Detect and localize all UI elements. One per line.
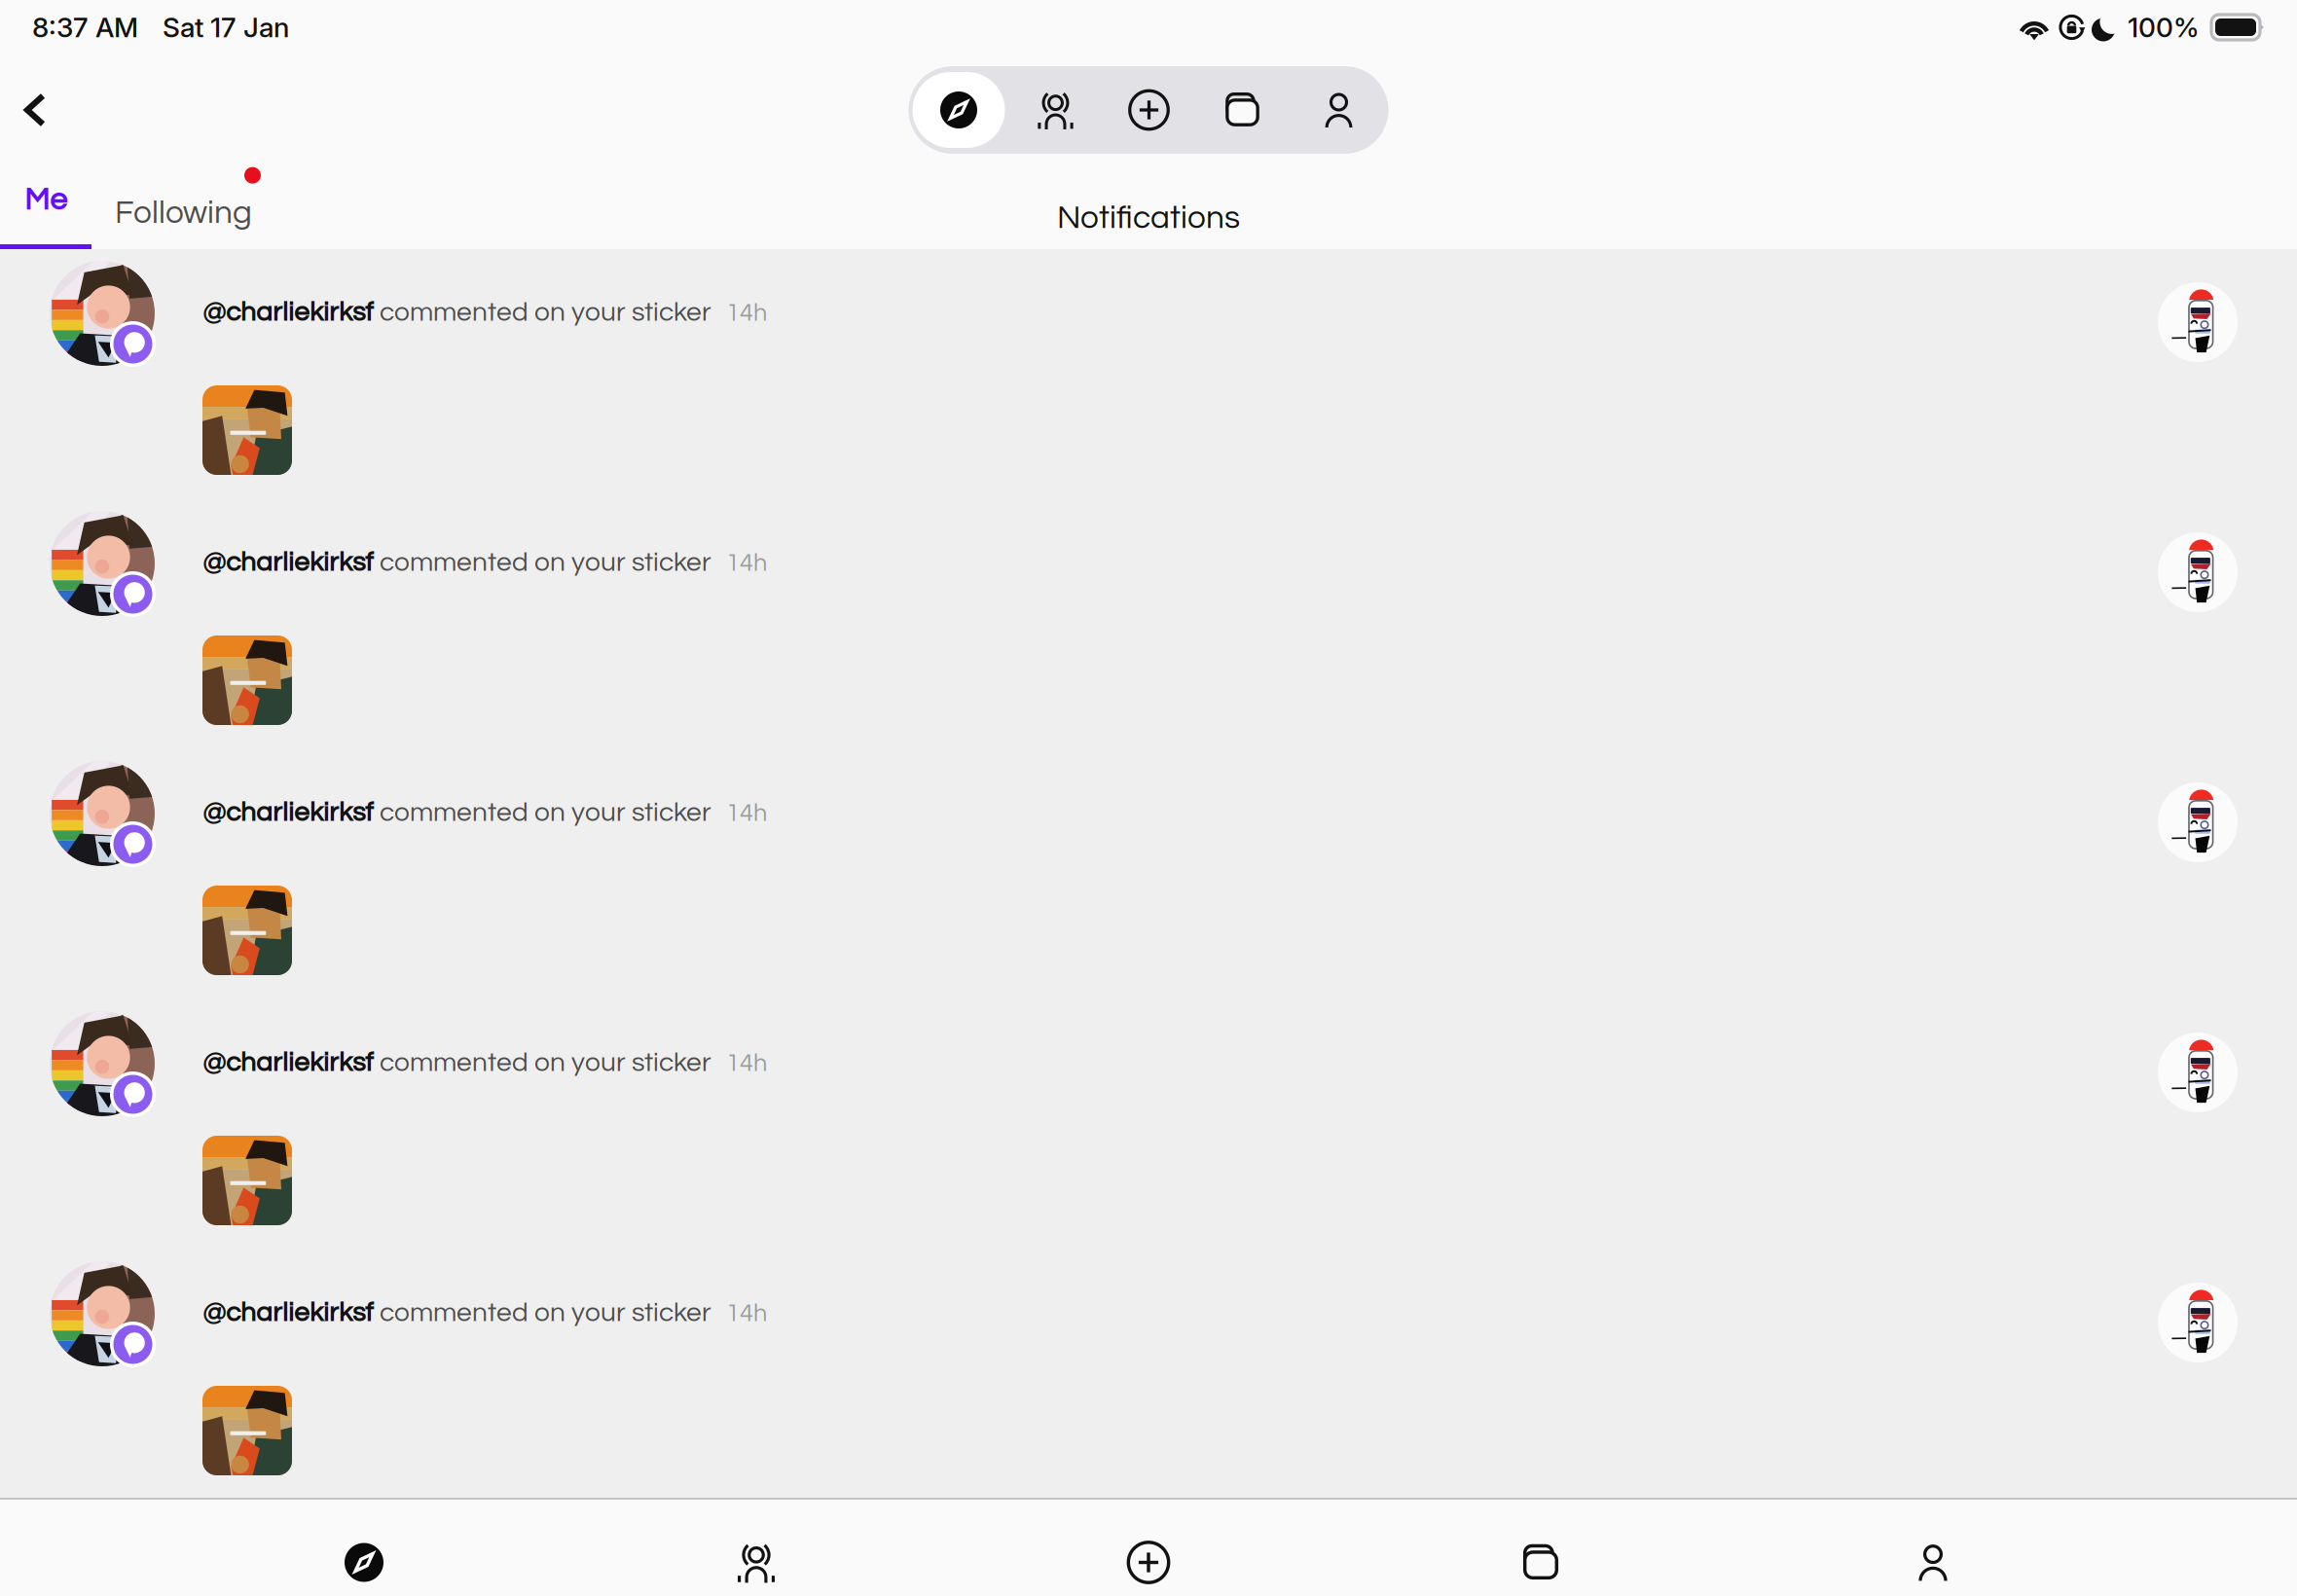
staticText: 14h <box>711 1051 767 1076</box>
button[interactable]: Create <box>952 1514 1345 1596</box>
staticText: 14h <box>711 1301 767 1326</box>
button[interactable]: @charliekirksf <box>0 1250 2297 1500</box>
staticText: @charliekirksf <box>202 1049 374 1077</box>
staticText: commented on your sticker <box>374 548 711 577</box>
staticText: 14h <box>711 551 767 576</box>
staticText: 8:37 AM <box>32 11 138 44</box>
button[interactable]: Explore <box>168 1514 560 1596</box>
staticText: @charliekirksf <box>202 1299 374 1327</box>
staticText: 14h <box>711 301 767 326</box>
staticText: 14h <box>711 801 767 826</box>
staticText: commented on your sticker <box>374 1049 711 1077</box>
button[interactable]: @charliekirksf <box>0 749 2297 999</box>
button[interactable]: Collection <box>1196 66 1289 154</box>
staticText: Me <box>24 184 67 216</box>
staticText: @charliekirksf <box>202 799 374 827</box>
button[interactable]: Profile <box>1737 1514 2129 1596</box>
button[interactable]: Community <box>560 1514 952 1596</box>
button[interactable]: Explore <box>909 66 1009 154</box>
button[interactable]: Following <box>91 154 252 249</box>
button[interactable]: Create <box>1102 66 1196 154</box>
staticText: @charliekirksf <box>202 548 374 577</box>
button[interactable]: @charliekirksf <box>0 249 2297 499</box>
staticText: 100% <box>2128 11 2200 44</box>
button[interactable]: Back <box>0 66 70 154</box>
button[interactable]: Profile <box>1289 66 1388 154</box>
staticText: commented on your sticker <box>374 298 711 326</box>
button[interactable]: @charliekirksf <box>0 499 2297 749</box>
staticText: commented on your sticker <box>374 1299 711 1327</box>
staticText: Sat 17 Jan <box>163 11 289 44</box>
button[interactable]: Me <box>0 154 91 249</box>
staticText: Notifications <box>1057 201 1240 235</box>
button[interactable]: Collection <box>1345 1514 1737 1596</box>
button[interactable]: Community <box>1009 66 1102 154</box>
staticText: @charliekirksf <box>202 298 374 326</box>
button[interactable]: @charliekirksf <box>0 999 2297 1250</box>
staticText: Following <box>115 196 252 230</box>
staticText: commented on your sticker <box>374 799 711 827</box>
